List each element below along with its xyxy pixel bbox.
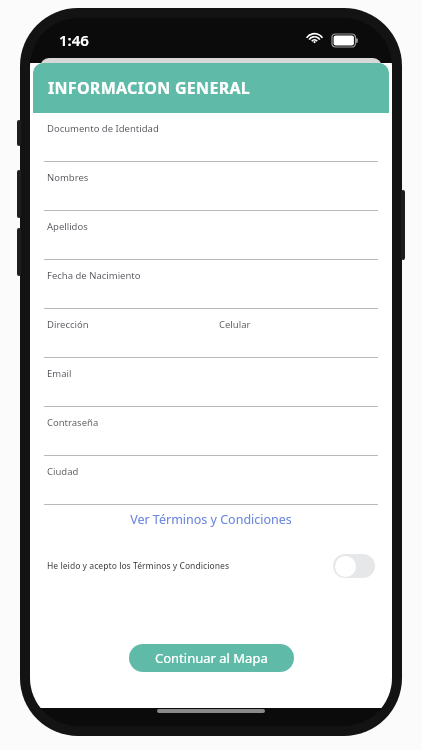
staticText: Nombres bbox=[47, 171, 89, 184]
staticText: Email bbox=[47, 367, 72, 380]
staticText: Ciudad bbox=[47, 465, 79, 478]
staticText: He leido y acepto los Términos y Condici… bbox=[47, 560, 230, 572]
button[interactable]: Aceptar Términos y Condiciones bbox=[333, 554, 375, 578]
staticText: Continuar al Mapa bbox=[155, 649, 268, 667]
staticText: INFORMACION GENERAL bbox=[48, 77, 251, 99]
button[interactable]: Ver Términos y Condiciones bbox=[30, 505, 392, 533]
staticText: Dirección bbox=[47, 318, 89, 331]
staticText: Documento de Identidad bbox=[47, 122, 159, 135]
staticText: Celular bbox=[219, 318, 251, 331]
button[interactable]: He leido y acepto los Términos y Condici… bbox=[47, 549, 375, 583]
staticText: Fecha de Nacimiento bbox=[47, 269, 141, 282]
staticText: Ver Términos y Condiciones bbox=[130, 511, 292, 528]
staticText: Contraseña bbox=[47, 416, 99, 429]
button[interactable]: Continuar al Mapa bbox=[129, 644, 294, 672]
staticText: Apellidos bbox=[47, 220, 88, 233]
staticText: 1:46 bbox=[59, 30, 89, 50]
